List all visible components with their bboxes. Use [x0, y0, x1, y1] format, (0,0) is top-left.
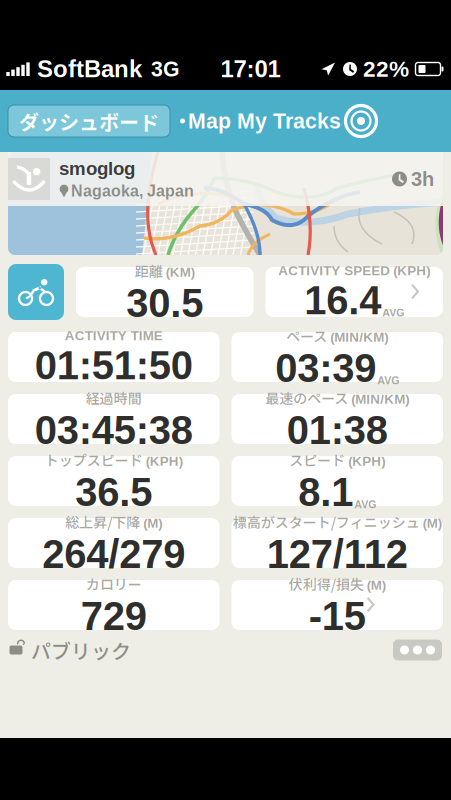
staticText: -15 — [309, 594, 366, 638]
staticText: (MIN/KM) — [330, 330, 388, 345]
staticText: 3G — [151, 57, 180, 81]
staticText: カロリー — [86, 573, 142, 594]
button[interactable]: Cycling activity — [8, 264, 64, 320]
button[interactable]: ACTIVITY TIME — [8, 332, 219, 382]
staticText: 標高がスタート/フィニッシュ — [233, 511, 420, 532]
staticText: (M) — [143, 516, 162, 531]
staticText: 17:01 — [220, 56, 280, 82]
button[interactable]: 伏利得/損失 — [231, 580, 443, 630]
button[interactable]: 最速のペース — [231, 394, 443, 444]
staticText: 127/112 — [267, 532, 408, 576]
staticText: SoftBank — [37, 56, 142, 82]
staticText: 距離 — [135, 260, 163, 281]
button[interactable]: ACTIVITY SPEED — [265, 267, 443, 317]
staticText: パブリック — [31, 635, 131, 664]
staticText: ACTIVITY TIME — [65, 328, 163, 343]
button[interactable]: 標高がスタート/フィニッシュ — [231, 518, 443, 568]
staticText: 8.1 — [298, 470, 353, 514]
staticText: 36.5 — [75, 470, 152, 514]
staticText: (KPH) — [393, 263, 430, 278]
staticText: AVG — [382, 307, 404, 319]
staticText: ACTIVITY SPEED — [278, 263, 390, 278]
button[interactable]: カロリー — [8, 580, 219, 630]
button[interactable]: ペース — [231, 332, 443, 382]
staticText: 総上昇/下降 — [65, 511, 140, 532]
staticText: スピード — [289, 449, 345, 470]
staticText: (KM) — [166, 265, 195, 280]
staticText: ペース — [286, 325, 327, 346]
staticText: 01:51:50 — [35, 343, 193, 388]
staticText: 最速のペース — [265, 387, 348, 408]
button[interactable]: ダッシュボード — [8, 105, 170, 137]
staticText: (MIN/KM) — [351, 392, 409, 407]
staticText: 01:38 — [287, 408, 388, 452]
staticText: ダッシュボード — [19, 106, 159, 135]
staticText: 729 — [81, 594, 147, 638]
staticText: AVG — [377, 375, 399, 386]
staticText: (M) — [367, 578, 386, 593]
button[interactable]: 経過時間 — [8, 394, 219, 444]
staticText: Nagaoka, Japan — [71, 182, 194, 200]
staticText: smoglog — [59, 158, 135, 179]
staticText: (M) — [423, 516, 442, 531]
button[interactable]: 距離 — [76, 267, 253, 317]
staticText: (KPH) — [348, 454, 385, 469]
button[interactable]: スピード — [231, 456, 443, 506]
staticText: (KPH) — [146, 454, 183, 469]
staticText: 03:45:38 — [35, 408, 193, 452]
staticText: 264/279 — [42, 532, 185, 576]
staticText: 3h — [411, 168, 434, 190]
staticText: 03:39 — [275, 346, 376, 390]
staticText: トップスピード — [45, 449, 143, 470]
button[interactable]: More options — [393, 639, 442, 660]
staticText: 30.5 — [126, 281, 203, 325]
button[interactable]: 総上昇/下降 — [8, 518, 219, 568]
staticText: 経過時間 — [86, 387, 142, 408]
staticText: AVG — [354, 499, 376, 510]
staticText: 22% — [363, 56, 409, 82]
staticText: Map My Tracks — [188, 109, 341, 133]
staticText: 16.4 — [304, 278, 381, 323]
staticText: 伏利得/損失 — [289, 573, 364, 594]
button[interactable]: トップスピード — [8, 456, 219, 506]
